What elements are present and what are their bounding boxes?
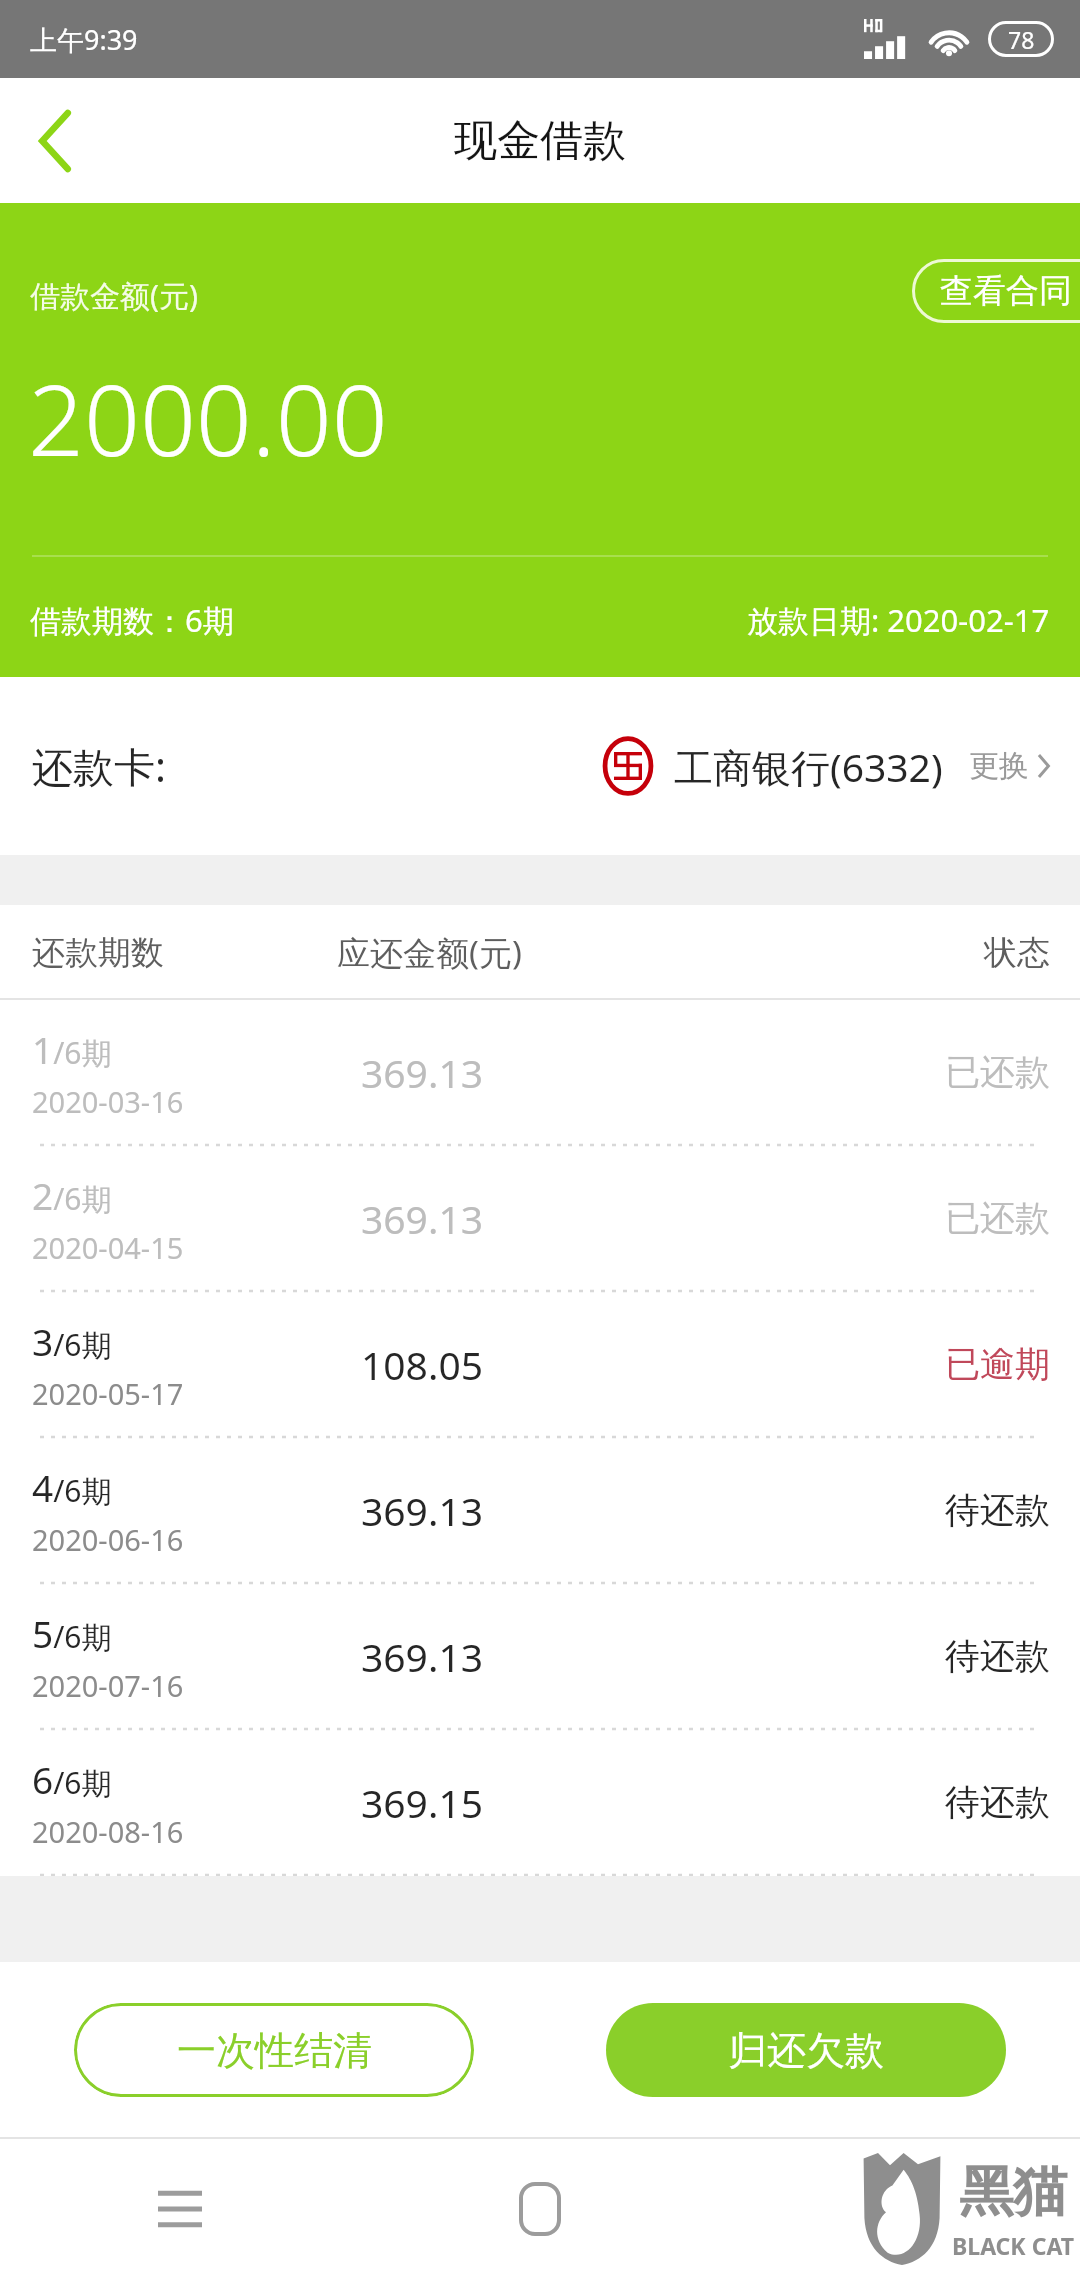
staticText: 上午9:39 [30,21,138,58]
button[interactable]: 4/6期 [0,1438,1080,1582]
staticText: 待还款 [945,1488,1050,1532]
staticText: 待还款 [945,1634,1050,1678]
staticText: BLACK CAT [952,2230,1074,2261]
staticText: 已逾期 [945,1342,1050,1386]
staticText: 369.13 [361,1046,483,1099]
staticText: 3/6期 [32,1316,112,1366]
staticText: 更换 [969,747,1029,785]
staticText: 借款金额(元) [30,275,198,316]
staticText: 78 [1008,24,1035,55]
button[interactable]: Back [720,2137,1080,2280]
staticText: 查看合同 [940,270,1072,312]
staticText: 一次性结清 [177,2026,372,2075]
staticText: 黑猫 [959,2158,1067,2226]
staticText: 2020-03-16 [32,1082,184,1121]
staticText: 1/6期 [32,1024,112,1074]
button[interactable]: 6/6期 [0,1730,1080,1874]
staticText: 369.15 [361,1776,483,1829]
staticText: 2020-08-16 [32,1812,184,1851]
staticText: 108.05 [361,1338,483,1391]
button[interactable]: 一次性结清 [74,2003,474,2097]
button[interactable]: 2/6期 [0,1146,1080,1290]
staticText: 现金借款 [454,114,626,168]
staticText: 还款卡: [32,738,166,794]
button[interactable]: 归还欠款 [606,2003,1006,2097]
button[interactable]: 5/6期 [0,1584,1080,1728]
staticText: 6/6期 [32,1754,112,1804]
staticText: 5/6期 [32,1608,112,1658]
staticText: 已还款 [945,1196,1050,1240]
staticText: 369.13 [361,1630,483,1683]
staticText: 已还款 [945,1050,1050,1094]
staticText: 4/6期 [32,1462,112,1512]
staticText: 2020-04-15 [32,1228,184,1267]
staticText: 2020-06-16 [32,1520,184,1559]
staticText: 待还款 [945,1780,1050,1824]
button[interactable]: Back [0,86,110,196]
button[interactable]: 查看合同 [912,259,1080,323]
staticText: 借款期数：6期 [30,599,234,641]
staticText: 放款日期: 2020-02-17 [747,599,1050,641]
staticText: 工商银行(6332) [674,740,943,793]
staticText: 2020-05-17 [32,1374,184,1413]
staticText: 状态 [984,932,1050,974]
button[interactable]: 还款卡: [0,677,1080,855]
button[interactable]: 1/6期 [0,1000,1080,1144]
staticText: 归还欠款 [728,2026,884,2075]
staticText: 2020-07-16 [32,1666,184,1705]
button[interactable]: Recent apps [0,2137,360,2280]
button[interactable]: 3/6期 [0,1292,1080,1436]
staticText: 369.13 [361,1484,483,1537]
staticText: 应还金额(元) [337,930,522,975]
button[interactable]: Home [360,2137,720,2280]
staticText: 还款期数 [32,932,164,974]
staticText: 2/6期 [32,1170,112,1220]
staticText: 2000.00 [28,351,388,484]
staticText: 369.13 [361,1192,483,1245]
